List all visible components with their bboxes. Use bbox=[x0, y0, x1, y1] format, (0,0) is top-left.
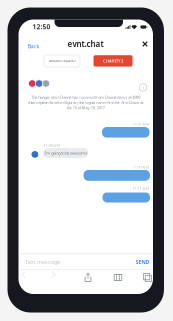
staticText: Back bbox=[27, 43, 39, 50]
button[interactable]: CHARITY 2 bbox=[93, 55, 132, 67]
staticText: evnt.chat bbox=[67, 39, 103, 49]
button[interactable]: STANDARD ALLIANCE bbox=[44, 55, 80, 67]
staticText: The hangar alert Daenit has received fro… bbox=[28, 94, 143, 110]
staticText: SEND bbox=[135, 258, 149, 266]
staticText: I'm going to be awesome bbox=[44, 150, 87, 156]
staticText: 12:50 bbox=[32, 22, 50, 31]
staticText: 11:11 AM bbox=[132, 186, 149, 191]
button[interactable]: Bookmarks bbox=[111, 271, 125, 284]
button[interactable]: Forward bbox=[52, 271, 66, 283]
button[interactable]: Back bbox=[22, 271, 36, 283]
button[interactable] bbox=[102, 127, 149, 138]
button[interactable]: I'm going to be awesome bbox=[43, 148, 88, 158]
staticText: 11:07 AM bbox=[132, 121, 149, 127]
staticText: 11:08 AM bbox=[43, 143, 60, 148]
button[interactable] bbox=[83, 170, 150, 181]
staticText: Text message bbox=[25, 258, 60, 266]
button[interactable]: Details bbox=[138, 83, 147, 92]
staticText: STANDARD ALLIANCE bbox=[48, 59, 75, 63]
button[interactable]: SEND bbox=[124, 258, 149, 265]
staticText: i bbox=[142, 84, 143, 91]
staticText: CHARITY 2 bbox=[103, 58, 123, 63]
button[interactable]: Tabs bbox=[140, 271, 154, 284]
button[interactable]: Share bbox=[81, 271, 95, 284]
button[interactable]: Back bbox=[27, 43, 49, 49]
staticText: 11:09 AM bbox=[132, 164, 149, 170]
button[interactable] bbox=[102, 192, 150, 202]
button[interactable]: Close bbox=[138, 39, 151, 49]
